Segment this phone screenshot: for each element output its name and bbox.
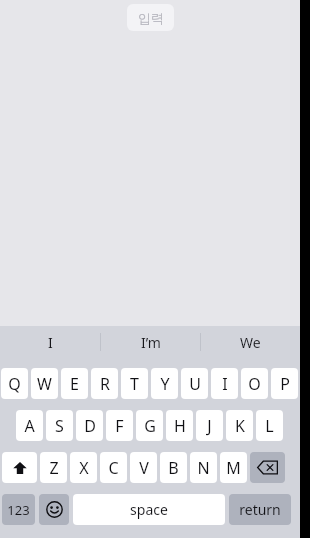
button[interactable]: 123 [2, 494, 35, 525]
staticText: M [226, 457, 241, 479]
staticText: I [222, 373, 228, 395]
staticText: A [24, 415, 35, 437]
button[interactable]: Q [1, 368, 28, 399]
button[interactable]: D [76, 410, 103, 441]
button[interactable]: I [211, 368, 238, 399]
button[interactable]: X [70, 452, 97, 483]
staticText: R [100, 373, 110, 395]
staticText: W [37, 373, 52, 395]
button[interactable]: I’m [101, 326, 200, 358]
staticText: Q [8, 373, 21, 395]
staticText: S [55, 415, 64, 437]
button[interactable]: E [61, 368, 88, 399]
button[interactable]: S [46, 410, 73, 441]
staticText: F [115, 415, 124, 437]
staticText: H [174, 415, 186, 437]
button[interactable]: M [220, 452, 247, 483]
button[interactable]: U [181, 368, 208, 399]
button[interactable]: N [190, 452, 217, 483]
button[interactable]: H [166, 410, 193, 441]
staticText: space [130, 500, 168, 519]
button[interactable]: return [229, 494, 291, 525]
button[interactable]: Y [151, 368, 178, 399]
staticText: C [108, 457, 119, 479]
button[interactable]: Z [40, 452, 67, 483]
staticText: O [248, 373, 261, 395]
staticText: return [239, 500, 281, 519]
button[interactable]: W [31, 368, 58, 399]
button[interactable]: R [91, 368, 118, 399]
button[interactable]: J [196, 410, 223, 441]
staticText: 입력 [138, 10, 164, 26]
button[interactable]: V [130, 452, 157, 483]
staticText: B [168, 457, 179, 479]
staticText: D [84, 415, 96, 437]
button[interactable]: We [201, 326, 300, 358]
button[interactable]: L [256, 410, 283, 441]
staticText: G [144, 415, 156, 437]
button[interactable]: K [226, 410, 253, 441]
staticText: N [197, 457, 210, 479]
button[interactable]: A [16, 410, 43, 441]
button[interactable]: Emoji [39, 494, 69, 525]
staticText: Z [49, 457, 59, 479]
button[interactable]: I [0, 326, 100, 358]
staticText: Y [160, 373, 170, 395]
staticText: We [240, 333, 261, 352]
staticText: V [139, 457, 149, 479]
staticText: E [70, 373, 79, 395]
staticText: I [48, 333, 53, 352]
button[interactable]: Backspace [250, 452, 285, 483]
button[interactable]: Shift [2, 452, 37, 483]
button[interactable]: P [271, 368, 298, 399]
button[interactable]: B [160, 452, 187, 483]
staticText: K [235, 415, 245, 437]
staticText: X [79, 457, 89, 479]
button[interactable]: O [241, 368, 268, 399]
staticText: P [280, 373, 290, 395]
button[interactable]: G [136, 410, 163, 441]
staticText: L [265, 415, 274, 437]
button[interactable]: C [100, 452, 127, 483]
staticText: T [130, 373, 139, 395]
staticText: J [207, 415, 212, 437]
staticText: U [189, 373, 201, 395]
button[interactable]: 입력 [127, 4, 174, 31]
staticText: 123 [7, 501, 30, 519]
button[interactable]: T [121, 368, 148, 399]
button[interactable]: F [106, 410, 133, 441]
button[interactable]: space [73, 494, 225, 525]
staticText: I’m [141, 333, 161, 352]
